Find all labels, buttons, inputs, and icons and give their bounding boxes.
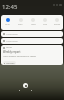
staticText: Rotate (54, 23, 61, 26)
staticText: Cast (43, 23, 48, 26)
staticText: Weekly report (3, 50, 21, 54)
button[interactable]: Cast (39, 18, 51, 26)
button[interactable]: Notification (1, 38, 63, 44)
button[interactable]: Rotate (51, 18, 63, 26)
button[interactable]: Wi-Fi (1, 18, 14, 26)
staticText: Manage (6, 62, 15, 64)
staticText: 12:45 (2, 3, 18, 11)
staticText: Notification (6, 40, 18, 43)
staticText: Gmail (6, 46, 12, 49)
button[interactable]: Home (23, 83, 28, 88)
button[interactable]: Notification (1, 31, 63, 37)
staticText: Notification (6, 33, 18, 36)
staticText: Light (31, 23, 36, 26)
button[interactable]: Gmail (1, 45, 63, 65)
button[interactable]: Light (27, 18, 39, 26)
button[interactable]: Data (14, 18, 27, 26)
staticText: Data (18, 23, 23, 26)
staticText: Wi-Fi (5, 23, 10, 26)
button[interactable]: Manage (4, 62, 15, 64)
staticText: Your activity summary is ready (3, 55, 36, 58)
